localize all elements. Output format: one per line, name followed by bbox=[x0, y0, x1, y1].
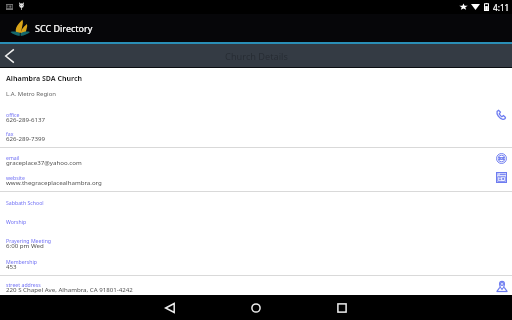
button[interactable]: Call bbox=[492, 105, 511, 124]
staticText: 220 S Chapel Ave, Alhambra, CA 91801-424… bbox=[6, 285, 133, 293]
button[interactable]: street address bbox=[0, 276, 512, 300]
staticText: L.A. Metro Region bbox=[6, 90, 56, 98]
staticText: 626-289-6137 bbox=[6, 115, 46, 123]
button[interactable]: Recents bbox=[319, 295, 365, 320]
button[interactable]: Map bbox=[492, 276, 512, 296]
staticText: office bbox=[6, 111, 20, 118]
staticText: Sabbath School bbox=[6, 199, 44, 206]
button[interactable]: Email bbox=[492, 149, 511, 168]
staticText: graceplace37@yahoo.com bbox=[6, 158, 82, 166]
staticText: www.thegraceplacealhambra.org bbox=[6, 178, 102, 186]
button[interactable]: Back bbox=[147, 295, 193, 320]
staticText: 4:11 bbox=[493, 2, 510, 13]
staticText: Membership bbox=[6, 258, 37, 265]
staticText: fax bbox=[6, 130, 14, 137]
staticText: Worship bbox=[6, 218, 27, 225]
staticText: 6:00 pm Wed bbox=[6, 241, 44, 249]
staticText: website bbox=[6, 174, 25, 181]
staticText: SCC Directory bbox=[35, 22, 93, 34]
staticText: email bbox=[6, 154, 20, 161]
button[interactable]: office bbox=[0, 108, 512, 147]
staticText: 453 bbox=[6, 262, 17, 270]
button[interactable]: email bbox=[0, 148, 512, 191]
button[interactable]: Alhambra SDA Church bbox=[0, 68, 512, 108]
staticText: Alhambra SDA Church bbox=[6, 74, 83, 84]
staticText: 626-289-7399 bbox=[6, 134, 46, 142]
staticText: Prayering Meeting bbox=[6, 237, 52, 244]
button[interactable]: Back bbox=[0, 44, 22, 68]
staticText: street address bbox=[6, 281, 41, 288]
button[interactable]: Sabbath School bbox=[0, 192, 512, 275]
button[interactable]: Website bbox=[492, 168, 511, 187]
staticText: Church Details bbox=[225, 50, 288, 63]
button[interactable]: Home bbox=[233, 295, 279, 320]
